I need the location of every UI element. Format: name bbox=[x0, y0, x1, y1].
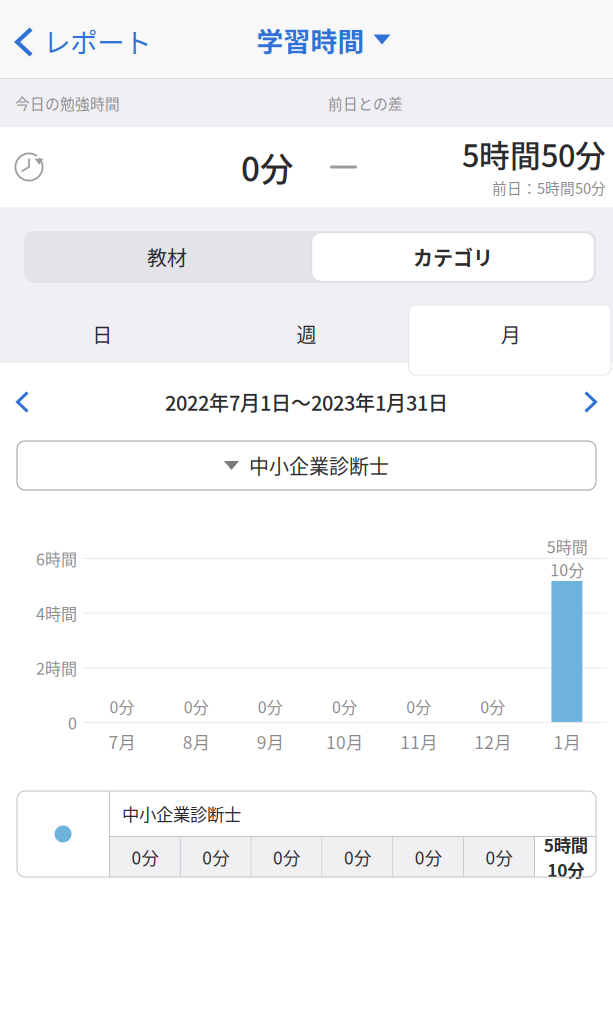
staticText: 5時間50分 bbox=[462, 132, 606, 176]
staticText: 4時間 bbox=[36, 601, 77, 625]
staticText: レポート bbox=[43, 21, 151, 61]
staticText: 12月 bbox=[474, 729, 511, 754]
staticText: 前日との差 bbox=[328, 92, 403, 114]
button[interactable]: カテゴリ bbox=[310, 231, 596, 283]
staticText: 0分 bbox=[486, 844, 513, 870]
staticText: 0分 bbox=[202, 844, 229, 870]
staticText: 0分 bbox=[415, 844, 442, 870]
staticText: 9月 bbox=[257, 729, 284, 754]
staticText: 教材 bbox=[147, 242, 187, 271]
staticText: 0分 bbox=[344, 844, 371, 870]
staticText: 1月 bbox=[553, 729, 580, 754]
staticText: 今日の勉強時間 bbox=[15, 92, 120, 114]
staticText: 2時間 bbox=[36, 656, 77, 679]
staticText: 8月 bbox=[183, 729, 210, 754]
button[interactable]: 学習時間 bbox=[250, 10, 396, 69]
staticText: 中小企業診断士 bbox=[122, 801, 241, 826]
staticText: 2022年7月1日〜2023年1月31日 bbox=[165, 387, 448, 416]
staticText: 0分 bbox=[332, 695, 357, 718]
button[interactable]: 前の期間 bbox=[0, 377, 43, 427]
staticText: 週 bbox=[296, 319, 316, 348]
button[interactable]: レポート bbox=[0, 8, 165, 71]
staticText: 0分 bbox=[480, 695, 505, 718]
button[interactable]: 週 bbox=[204, 305, 409, 363]
staticText: カテゴリ bbox=[413, 242, 493, 271]
button[interactable]: 中小企業診断士 bbox=[0, 441, 613, 490]
staticText: 0分 bbox=[273, 844, 300, 870]
staticText: 5時間 10分 bbox=[543, 832, 587, 882]
staticText: 5時間 10分 bbox=[546, 535, 587, 581]
staticText: 0分 bbox=[406, 695, 431, 718]
staticText: 0分 bbox=[258, 695, 283, 718]
staticText: 0 bbox=[68, 711, 77, 734]
button[interactable]: 教材 bbox=[24, 231, 310, 283]
staticText: 日 bbox=[92, 319, 112, 348]
button[interactable]: 日 bbox=[0, 305, 204, 363]
staticText: 学習時間 bbox=[256, 20, 364, 59]
staticText: 6時間 bbox=[36, 547, 77, 570]
staticText: 10月 bbox=[326, 729, 363, 754]
staticText: 0分 bbox=[110, 695, 135, 718]
staticText: 7月 bbox=[109, 729, 136, 754]
staticText: 月 bbox=[501, 319, 521, 348]
staticText: 0分 bbox=[184, 695, 209, 718]
button[interactable]: 月 bbox=[409, 305, 613, 375]
staticText: 前日：5時間50分 bbox=[492, 177, 606, 198]
button[interactable]: 次の期間 bbox=[570, 377, 613, 427]
staticText: 0分 bbox=[131, 844, 158, 870]
staticText: 中小企業診断士 bbox=[249, 451, 389, 480]
staticText: 11月 bbox=[400, 729, 437, 754]
staticText: 0分 bbox=[241, 143, 293, 191]
